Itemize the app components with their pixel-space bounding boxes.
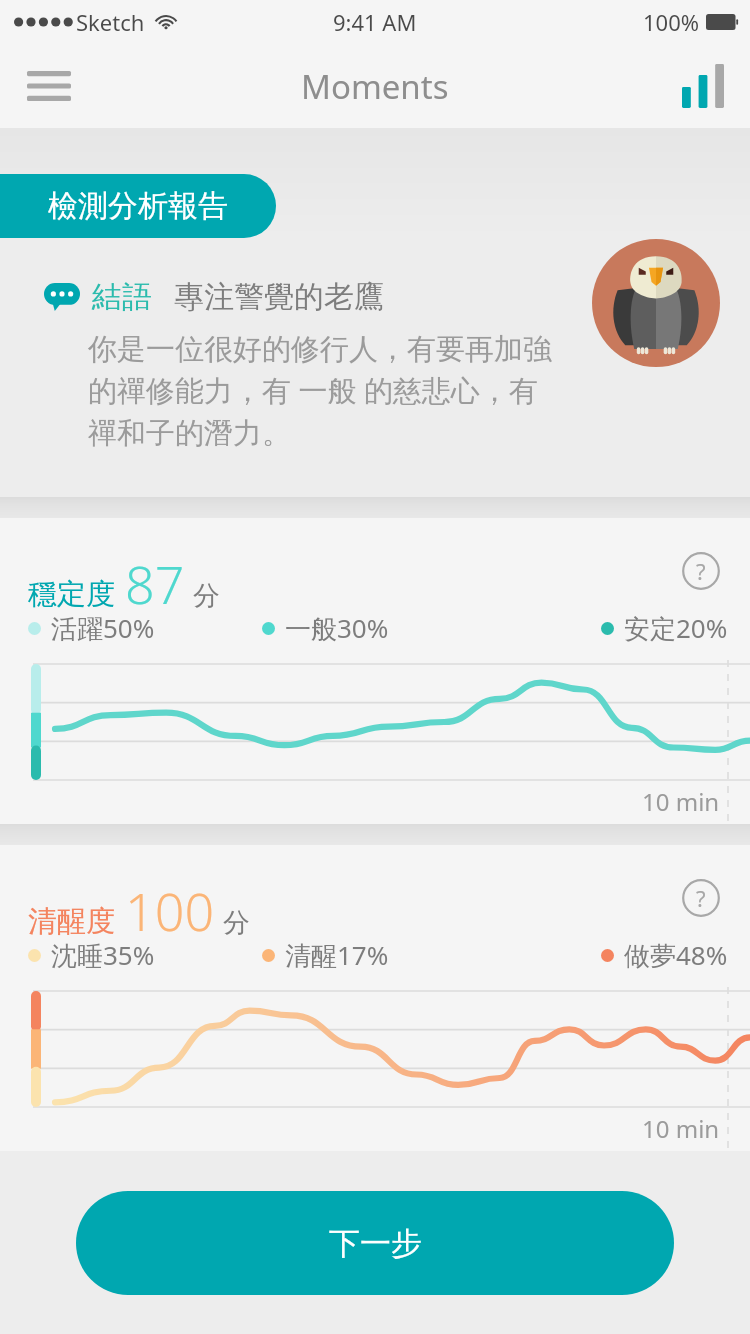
button[interactable]: 檢測分析報告 [0, 174, 276, 238]
staticText: 分 [223, 906, 250, 940]
staticText: 清醒17% [285, 937, 389, 973]
staticText: 100% [643, 7, 700, 37]
staticText: 87 [125, 548, 185, 619]
staticText: 一般30% [285, 610, 389, 646]
staticText: Sketch [76, 7, 145, 37]
staticText: 專注警覺的老鷹 [174, 278, 384, 316]
staticText: 100 [125, 875, 215, 946]
staticText: 結語 [92, 278, 152, 316]
staticText: 10 min [642, 785, 720, 818]
staticText: 清醒度 [28, 903, 115, 940]
staticText: ? [696, 556, 706, 586]
staticText: ? [696, 883, 706, 913]
staticText: 穩定度 [28, 576, 115, 613]
staticText: 分 [193, 579, 220, 613]
staticText: 10 min [642, 1112, 720, 1145]
button[interactable]: Help [678, 548, 724, 594]
button[interactable]: 下一步 [76, 1191, 674, 1295]
staticText: 沈睡35% [51, 937, 155, 973]
staticText: Moments [301, 64, 449, 109]
staticText: 做夢48% [624, 937, 728, 973]
button[interactable]: Help [678, 875, 724, 921]
staticText: 檢測分析報告 [48, 187, 228, 225]
staticText: 下一步 [329, 1224, 422, 1263]
staticText: 9:41 AM [333, 7, 417, 37]
button[interactable]: Menu [18, 59, 80, 113]
staticText: 你是一位很好的修行人，有要再加強的禪修能力，有 一般 的慈悲心，有禪和子的潛力。 [88, 331, 560, 451]
staticText: 安定20% [624, 610, 728, 646]
staticText: 活躍50% [51, 610, 155, 646]
button[interactable]: Statistics [674, 58, 732, 114]
